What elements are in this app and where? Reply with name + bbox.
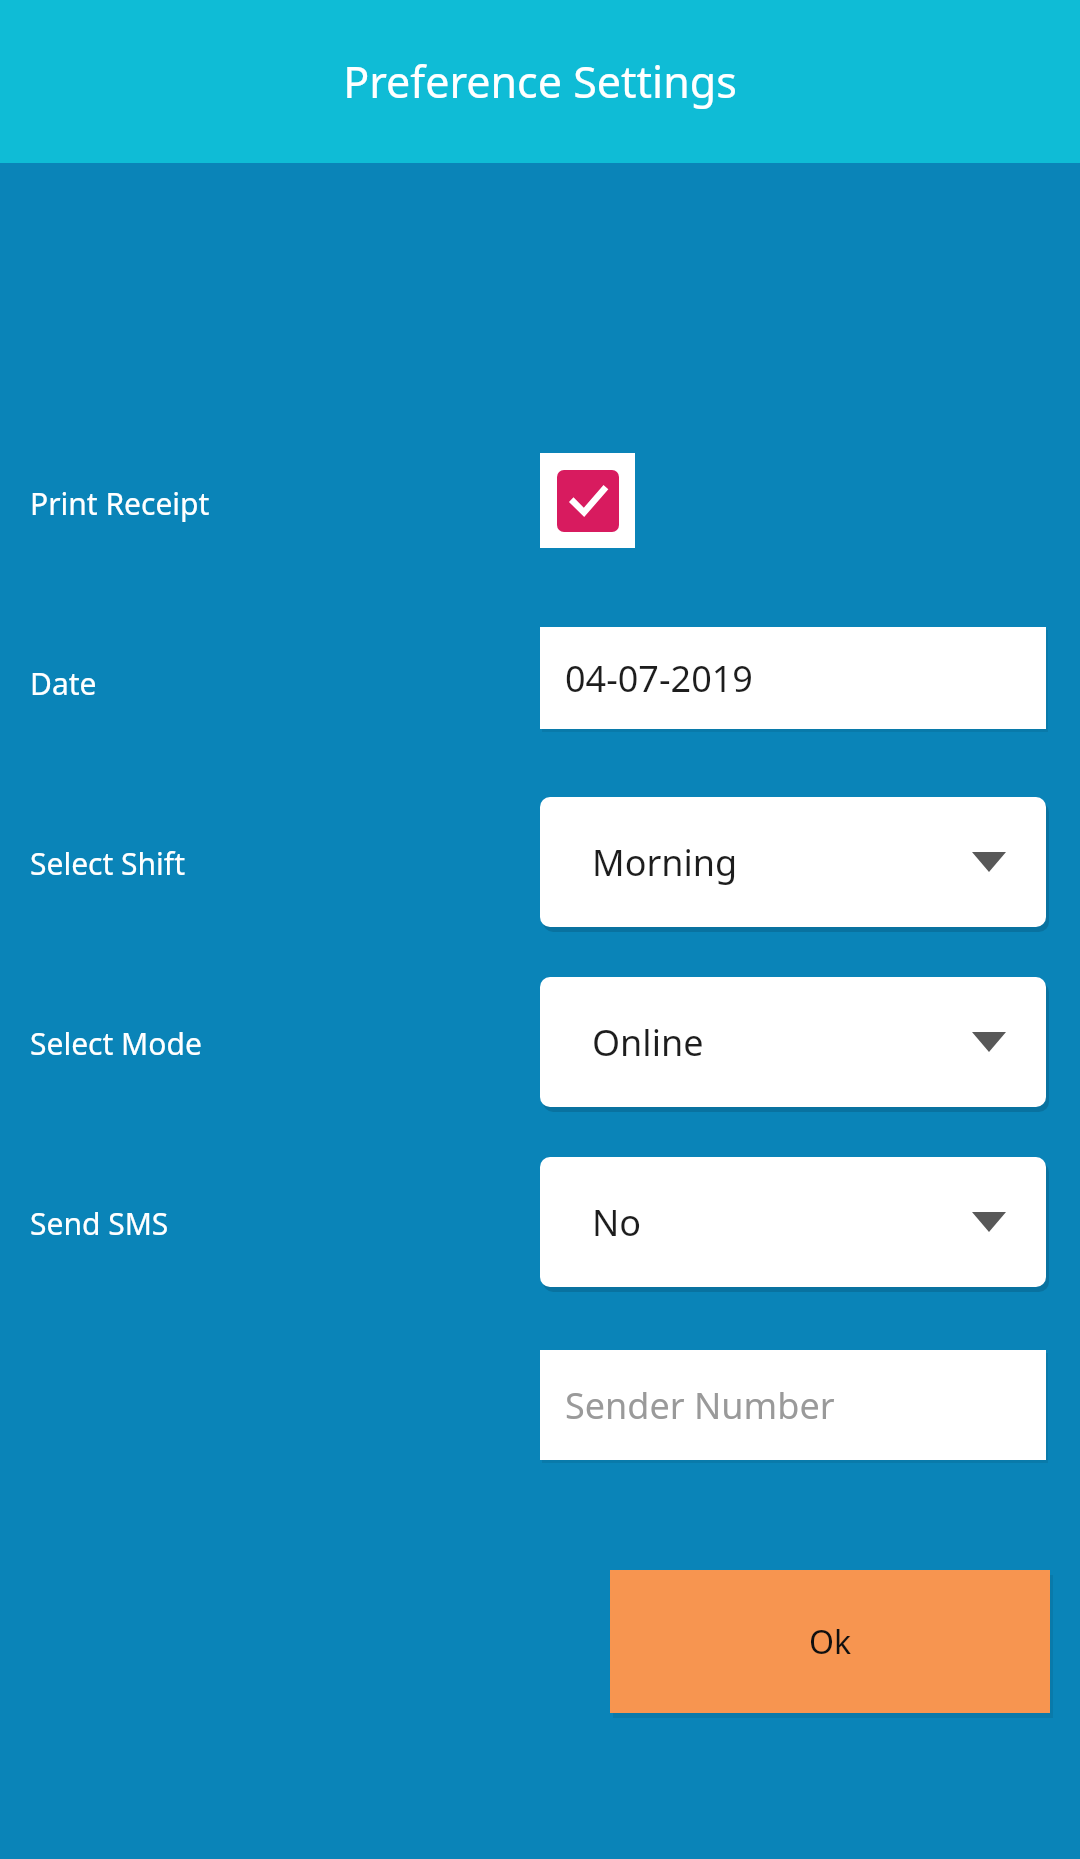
- button[interactable]: Date 04-07-2019: [540, 627, 1046, 729]
- button[interactable]: Sender Number input: [540, 1350, 1046, 1460]
- staticText: 04-07-2019: [565, 654, 753, 703]
- button[interactable]: Select Mode, Online: [540, 977, 1046, 1107]
- staticText: Select Mode: [30, 1023, 202, 1064]
- button[interactable]: Print Receipt checkbox, checked: [540, 453, 635, 548]
- button[interactable]: Select Shift, Morning: [540, 797, 1046, 927]
- staticText: Ok: [809, 1620, 852, 1664]
- staticText: Morning: [592, 838, 738, 887]
- staticText: Print Receipt: [30, 483, 210, 524]
- staticText: Select Shift: [30, 843, 185, 884]
- staticText: Sender Number: [565, 1381, 835, 1430]
- staticText: Online: [592, 1018, 704, 1067]
- staticText: Preference Settings: [343, 52, 737, 111]
- button[interactable]: Ok: [610, 1570, 1050, 1713]
- staticText: No: [592, 1198, 642, 1247]
- staticText: Date: [30, 663, 97, 704]
- button[interactable]: Send SMS, No: [540, 1157, 1046, 1287]
- staticText: Send SMS: [30, 1203, 169, 1244]
